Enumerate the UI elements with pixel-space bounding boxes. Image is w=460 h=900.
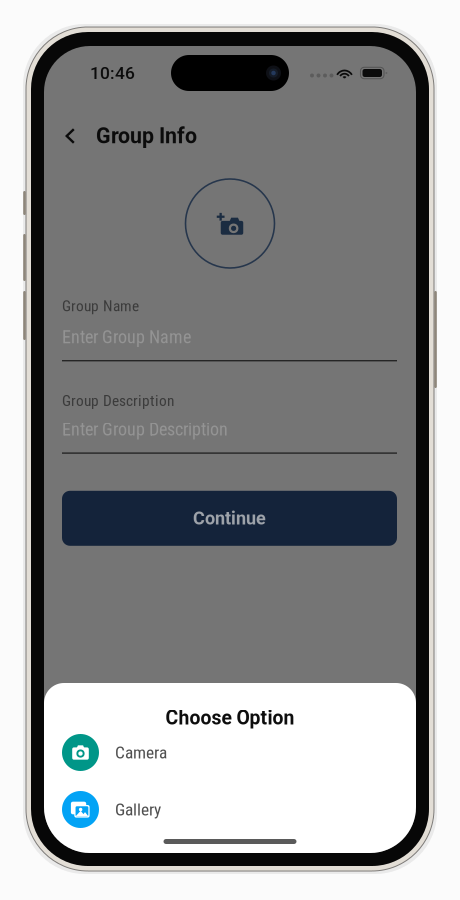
- staticText: Group Info: [96, 123, 197, 148]
- staticText: Enter Group Description: [62, 419, 228, 440]
- button[interactable]: Add group photo: [185, 179, 274, 268]
- button[interactable]: Gallery: [44, 781, 416, 838]
- staticText: Continue: [193, 508, 266, 529]
- button[interactable]: Group Info: [44, 116, 416, 156]
- staticText: Group Name: [62, 297, 139, 315]
- staticText: Gallery: [115, 799, 161, 820]
- button[interactable]: Continue: [62, 491, 397, 546]
- button[interactable]: Camera: [44, 724, 416, 781]
- staticText: 10:46: [90, 63, 135, 83]
- staticText: Group Description: [62, 392, 174, 410]
- staticText: Camera: [115, 742, 167, 763]
- staticText: Choose Option: [165, 707, 294, 729]
- staticText: Enter Group Name: [62, 326, 191, 348]
